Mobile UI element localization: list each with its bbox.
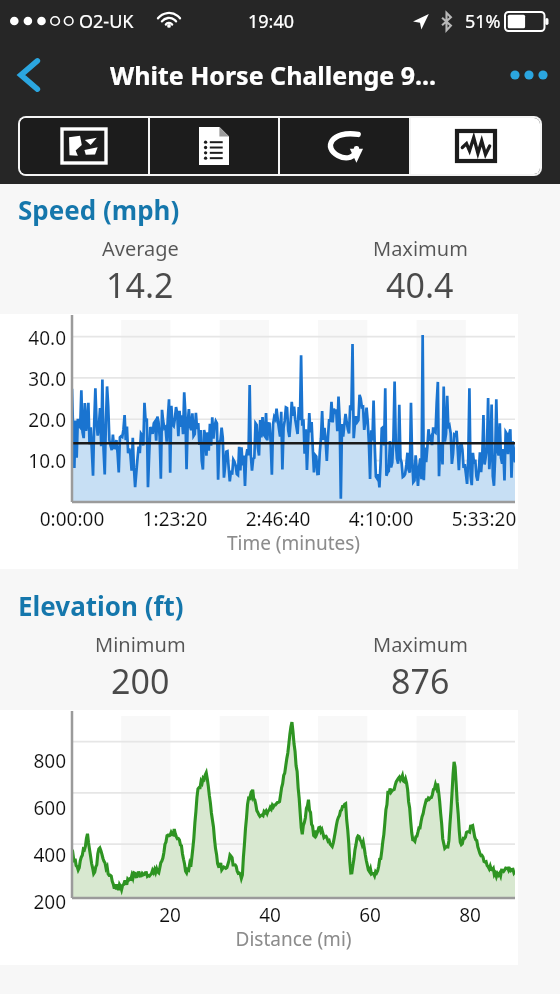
staticText: 14.2 [106, 262, 174, 308]
button[interactable]: More options [502, 48, 556, 102]
button[interactable]: Details [150, 118, 278, 174]
button[interactable]: Map [20, 118, 148, 174]
staticText: 200 [6, 889, 66, 915]
staticText: Minimum [95, 631, 186, 658]
staticText: 19:40 [248, 9, 295, 34]
staticText: Maximum [373, 631, 468, 658]
staticText: 10.0 [6, 448, 66, 474]
staticText: 2:46:40 [228, 506, 328, 532]
staticText: 40.0 [6, 325, 66, 351]
staticText: 800 [6, 748, 66, 774]
staticText: White Horse Challenge 9... [110, 58, 437, 92]
staticText: 20 [120, 902, 220, 928]
staticText: 40 [220, 902, 320, 928]
staticText: 200 [111, 658, 170, 704]
staticText: Average [102, 235, 179, 262]
staticText: O2-UK [79, 9, 134, 34]
staticText: Elevation (ft) [18, 588, 184, 623]
staticText: 30.0 [6, 366, 66, 392]
staticText: Time (minutes) [72, 530, 515, 556]
staticText: Maximum [373, 235, 468, 262]
staticText: 60 [320, 902, 420, 928]
staticText: 5:33:20 [434, 506, 534, 532]
button[interactable]: Charts [411, 118, 540, 174]
staticText: 20.0 [6, 407, 66, 433]
staticText: 40.4 [386, 262, 454, 308]
staticText: 876 [391, 658, 450, 704]
staticText: 51% [465, 9, 501, 34]
staticText: 4:10:00 [331, 506, 431, 532]
staticText: Distance (mi) [72, 926, 515, 952]
staticText: 80 [420, 902, 520, 928]
button[interactable]: Laps [280, 118, 409, 174]
button[interactable]: Back [4, 50, 54, 100]
staticText: 1:23:20 [125, 506, 225, 532]
staticText: Speed (mph) [18, 192, 180, 227]
staticText: 0:00:00 [22, 506, 122, 532]
staticText: 600 [6, 795, 66, 821]
staticText: 400 [6, 842, 66, 868]
